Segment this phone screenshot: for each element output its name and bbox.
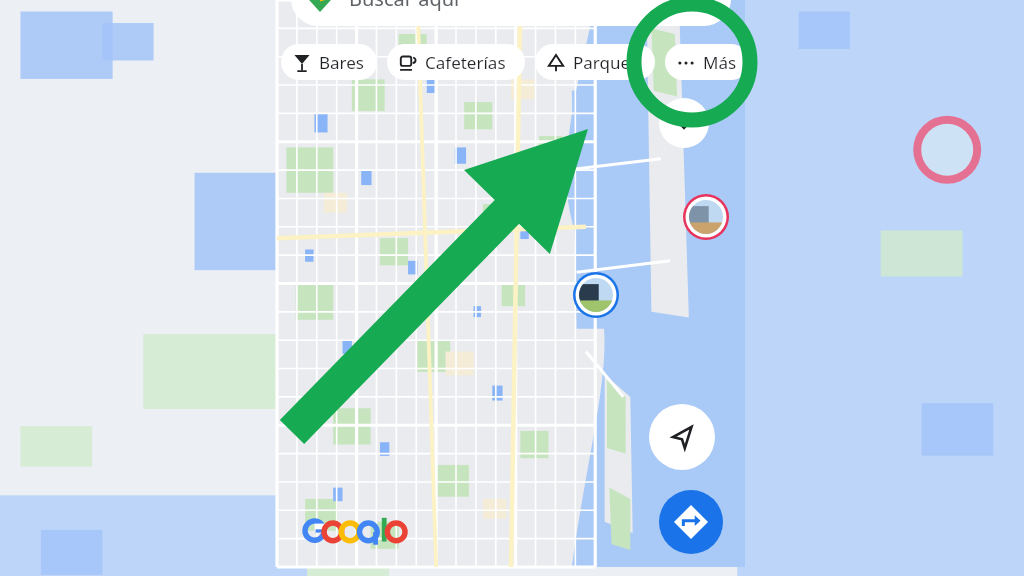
staticText: Buscar aquí <box>349 0 460 12</box>
button[interactable]: Expandir <box>659 98 709 148</box>
staticText: Más <box>703 51 737 74</box>
button[interactable]: Buscar aquí <box>291 0 731 26</box>
button[interactable]: Cómo llegar <box>659 490 723 554</box>
button[interactable]: Cafeterías <box>387 44 525 80</box>
button[interactable]: Mi ubicación <box>649 404 715 470</box>
button[interactable]: Bares <box>281 44 377 80</box>
staticText: Cafeterías <box>425 51 506 74</box>
button[interactable]: Parques <box>535 44 655 80</box>
staticText: Bares <box>319 51 364 74</box>
button[interactable]: Más <box>665 44 749 80</box>
staticText: Parques <box>573 51 639 74</box>
